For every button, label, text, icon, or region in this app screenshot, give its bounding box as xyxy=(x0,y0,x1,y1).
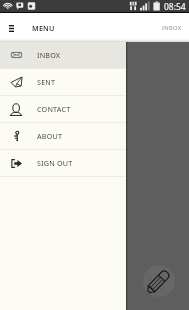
staticText: INBOX xyxy=(162,24,182,32)
button[interactable]: SENT xyxy=(0,69,126,95)
button[interactable]: Compose xyxy=(143,265,175,297)
button[interactable]: CONTACT xyxy=(0,96,126,122)
button[interactable]: INBOX xyxy=(0,42,126,68)
staticText: ABOUT xyxy=(37,131,63,141)
staticText: MENU xyxy=(32,23,55,33)
button[interactable]: ABOUT xyxy=(0,123,126,149)
button[interactable]: SIGN OUT xyxy=(0,150,126,176)
staticText: CONTACT xyxy=(37,104,71,114)
staticText: INBOX xyxy=(37,50,61,60)
staticText: 08:54 xyxy=(164,1,186,13)
staticText: SENT xyxy=(37,77,56,87)
staticText: SIGN OUT xyxy=(37,158,73,168)
button[interactable]: Open navigation drawer xyxy=(0,17,22,39)
